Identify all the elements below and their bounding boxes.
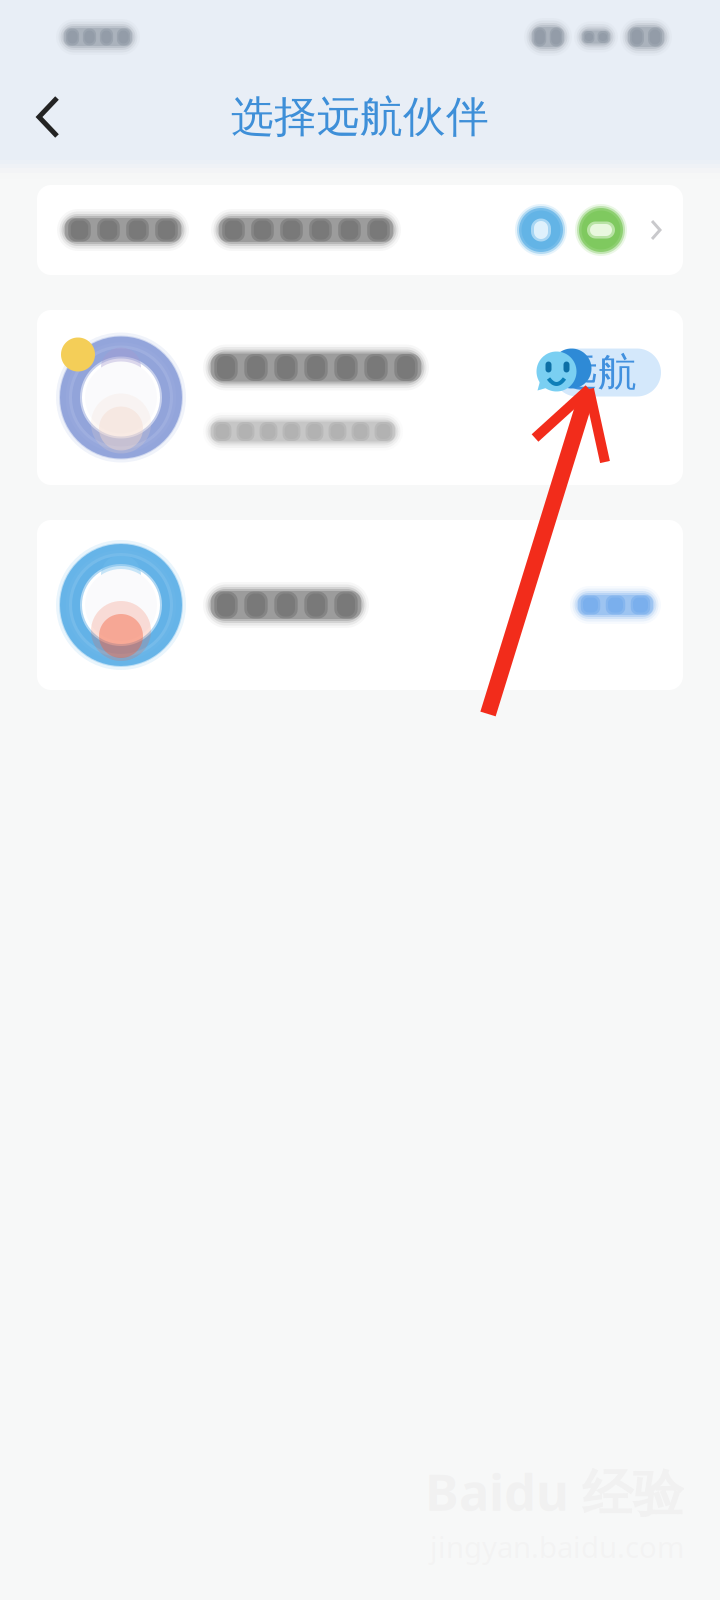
staticText: 选择远航伙伴 [231,91,489,143]
button[interactable]: 远航 [37,310,683,485]
button[interactable]: Back [0,74,96,160]
button[interactable] [37,185,683,275]
staticText: 远航 [559,349,637,396]
staticText: Baidu 经验 [425,1457,684,1525]
button[interactable] [37,520,683,690]
